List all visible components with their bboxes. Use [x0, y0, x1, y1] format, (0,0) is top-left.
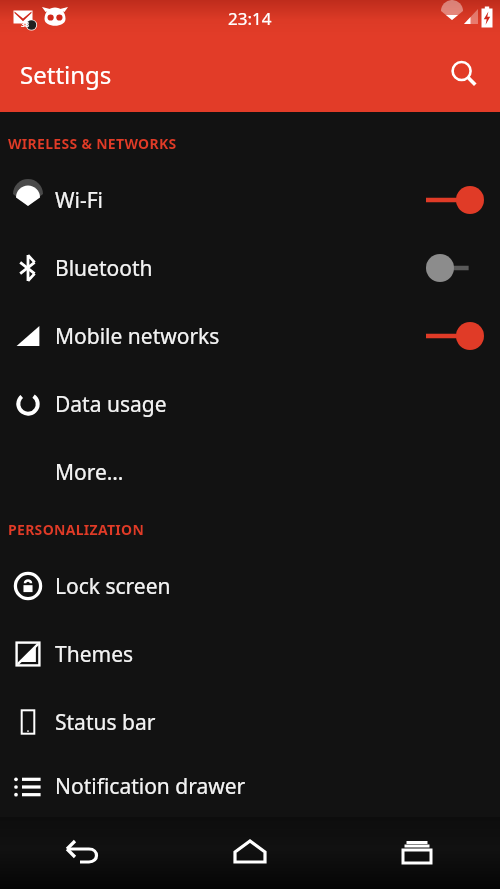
staticText: Wi-Fi: [55, 186, 410, 215]
button[interactable]: Toggle on: [424, 183, 486, 217]
staticText: Lock screen: [55, 572, 500, 601]
staticText: More…: [55, 458, 500, 487]
staticText: 23:14: [228, 7, 272, 30]
button[interactable]: Search: [436, 46, 492, 102]
button[interactable]: Lock screen: [0, 552, 500, 620]
button[interactable]: Toggle on: [424, 319, 486, 353]
button[interactable]: Notification drawer: [0, 756, 500, 817]
button[interactable]: Bluetooth: [0, 234, 500, 302]
staticText: Bluetooth: [55, 254, 410, 283]
button[interactable]: Data usage: [0, 370, 500, 438]
button[interactable]: Home: [166, 817, 333, 889]
staticText: 38: [21, 20, 30, 30]
button[interactable]: Recents: [333, 817, 500, 889]
staticText: WIRELESS & NETWORKS: [8, 134, 177, 153]
button[interactable]: Wi-Fi: [0, 166, 500, 234]
staticText: Status bar: [55, 708, 500, 737]
button[interactable]: More…: [0, 438, 500, 506]
staticText: Mobile networks: [55, 322, 410, 351]
staticText: Data usage: [55, 390, 500, 419]
staticText: PERSONALIZATION: [8, 520, 145, 539]
button[interactable]: Back: [0, 817, 166, 889]
staticText: Settings: [20, 58, 112, 91]
button[interactable]: Mobile networks: [0, 302, 500, 370]
staticText: Themes: [55, 640, 500, 669]
button[interactable]: Status bar: [0, 688, 500, 756]
staticText: Notification drawer: [55, 772, 500, 801]
button[interactable]: Toggle off: [424, 251, 486, 285]
button[interactable]: Themes: [0, 620, 500, 688]
